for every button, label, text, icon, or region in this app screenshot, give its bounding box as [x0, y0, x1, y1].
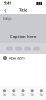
staticText: Title [19, 7, 27, 13]
staticText: ‹ [4, 5, 6, 15]
button[interactable]: Tab [28, 89, 37, 97]
button[interactable]: Back [2, 6, 8, 13]
staticText: ▮▮▮ [36, 1, 42, 5]
staticText: Row item [9, 55, 25, 61]
staticText: Tab [3, 93, 7, 97]
staticText: badge [3, 17, 12, 20]
button[interactable]: Tab [9, 89, 18, 97]
staticText: Tab [12, 93, 16, 97]
button[interactable]: Tab [0, 89, 9, 97]
staticText: Caption here [10, 34, 36, 39]
staticText: Tab [21, 93, 25, 97]
staticText: 9:41 [4, 0, 11, 6]
button[interactable]: Tab [37, 89, 46, 97]
button[interactable]: Tab [18, 89, 28, 97]
staticText: Tab [39, 93, 43, 97]
staticText: Tab [30, 93, 34, 97]
